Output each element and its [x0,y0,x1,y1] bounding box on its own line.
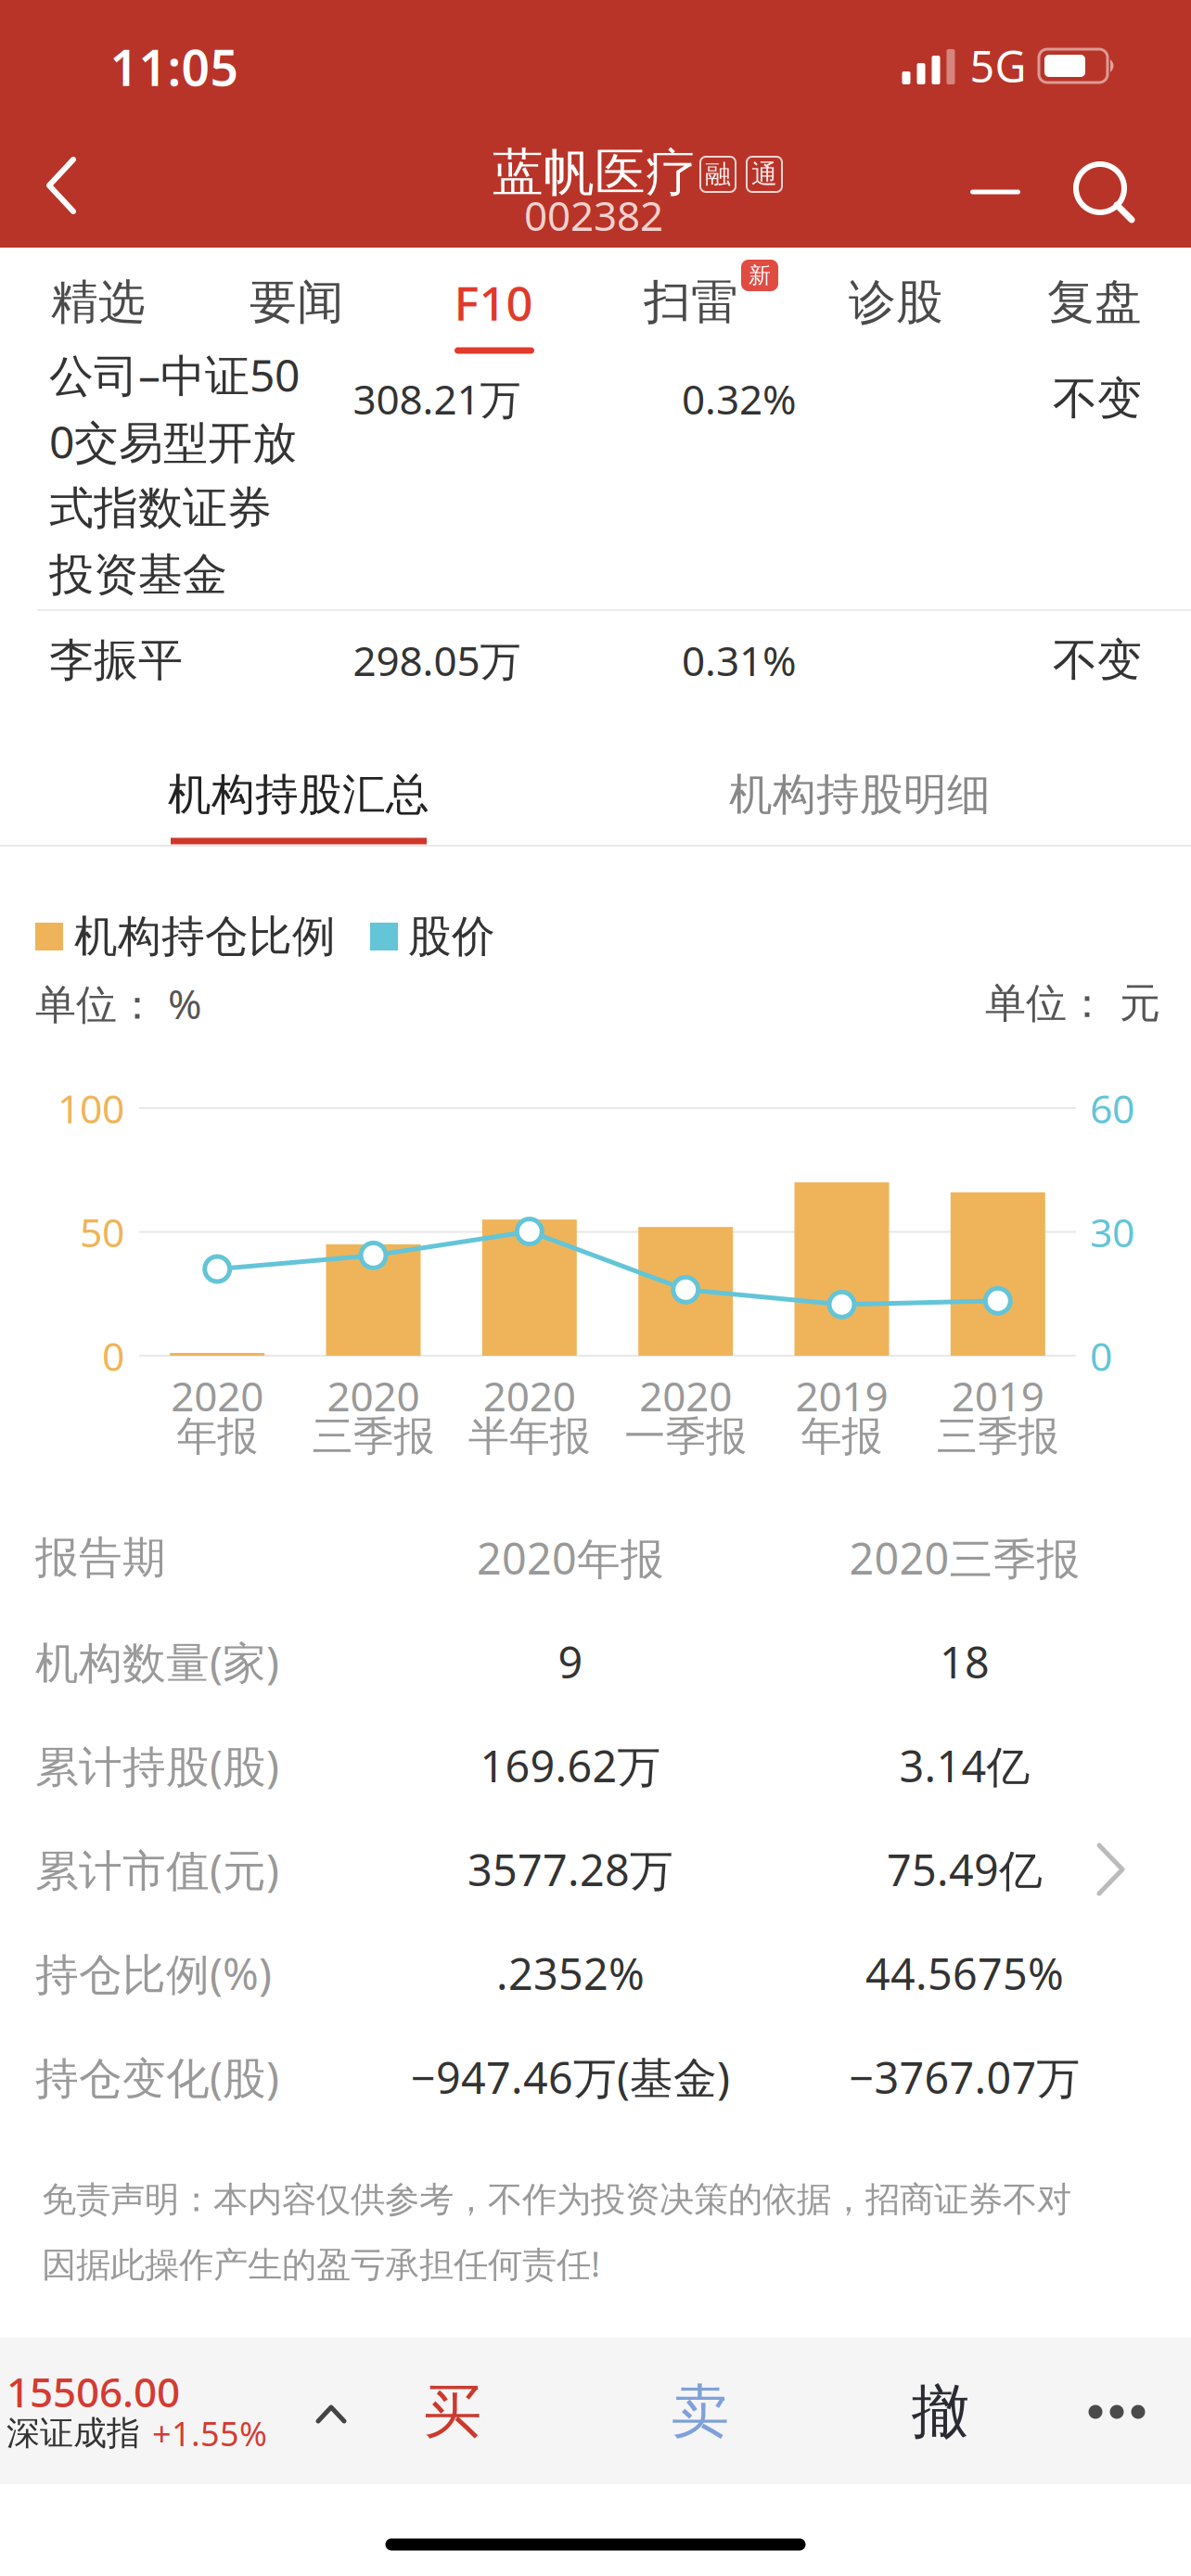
staticText: 002382 [524,188,663,242]
staticText: 100 [58,1082,124,1134]
staticText: 0.31% [682,633,797,687]
staticText: 半年报 [468,1411,591,1461]
staticText: 机构数量(家) [35,1633,279,1690]
staticText: 深证成指 [6,2413,140,2454]
button[interactable]: 诊股 [849,273,943,331]
staticText: +1.55% [152,2411,267,2455]
staticText: 式指数证券 [49,481,272,536]
button[interactable]: 买 [423,2376,482,2448]
staticText: 扫雷 [644,273,738,331]
staticText: 年报 [176,1411,258,1461]
staticText: 因据此操作产生的盈亏承担任何责任! [42,2241,600,2287]
staticText: 2019 [952,1368,1044,1423]
staticText: .2352% [496,1945,645,2002]
staticText: 投资基金 [49,548,227,602]
staticText: 2019 [795,1368,888,1423]
staticText: 298.05万 [353,633,521,687]
staticText: 卖 [671,2376,730,2448]
staticText: 不变 [1053,371,1142,426]
staticText: 2020 [327,1368,420,1423]
staticText: 11:05 [110,34,239,100]
staticText: 蓝帆医疗 [493,141,697,204]
staticText: 18 [940,1633,990,1690]
staticText: 2020 [639,1368,732,1423]
button[interactable]: Minimize [970,190,1020,194]
button[interactable]: 卖 [671,2376,730,2448]
staticText: 15506.00 [6,2364,180,2419]
staticText: 买 [423,2376,482,2448]
staticText: 复盘 [1047,273,1142,331]
button[interactable]: 累计市值(元) [0,1817,1191,1921]
staticText: 0 [102,1329,124,1382]
staticText: 0 [1090,1329,1112,1382]
button[interactable]: 要闻 [250,273,344,331]
staticText: 要闻 [250,273,344,331]
staticText: 单位： % [35,976,202,1030]
staticText: 75.49亿 [887,1841,1043,1898]
staticText: 三季报 [937,1411,1059,1461]
staticText: 持仓比例(%) [35,1945,272,2002]
button[interactable]: F10 [454,271,533,334]
staticText: 免责声明：本内容仅供参考，不作为投资决策的依据，招商证券不对 [42,2178,1071,2221]
staticText: 报告期 [35,1531,166,1584]
staticText: 44.5675% [865,1945,1064,2002]
staticText: 单位： 元 [985,978,1160,1028]
staticText: F10 [454,271,533,334]
staticText: 诊股 [849,273,943,331]
staticText: 机构持股汇总 [168,768,429,821]
staticText: 2020三季报 [849,1529,1080,1587]
button[interactable]: Search [1074,162,1133,222]
staticText: 不变 [1053,633,1142,688]
staticText: 一季报 [624,1411,747,1461]
staticText: 持仓变化(股) [35,2048,279,2106]
staticText: 2020年报 [477,1529,664,1587]
staticText: 9 [558,1633,583,1690]
staticText: 累计持股(股) [35,1737,279,1794]
staticText: 308.21万 [353,372,521,426]
staticText: 公司–中证50 [49,345,300,404]
button[interactable]: 撤 [911,2376,970,2448]
staticText: 李振平 [49,633,183,688]
staticText: 年报 [801,1411,883,1461]
staticText: 30 [1090,1206,1134,1258]
button[interactable]: 扫雷 [644,273,738,331]
staticText: 5G [970,37,1026,95]
staticText: 撤 [911,2376,970,2448]
staticText: 0.32% [682,372,797,426]
staticText: 融 [705,158,731,190]
staticText: 三季报 [312,1411,435,1461]
staticText: 50 [80,1206,124,1258]
staticText: 3577.28万 [467,1841,673,1898]
button[interactable]: More actions [1088,2404,1146,2419]
button[interactable]: Expand index panel [316,2404,346,2425]
staticText: 169.62万 [480,1737,661,1794]
staticText: 2020 [483,1368,576,1423]
button[interactable]: Back [45,156,77,215]
staticText: 0交易型开放 [49,412,297,471]
button[interactable]: 复盘 [1047,273,1142,331]
staticText: −3767.07万 [849,2048,1080,2106]
staticText: −947.46万(基金) [411,2048,730,2106]
staticText: 通 [751,158,777,190]
button[interactable]: 机构持股汇总 [168,768,429,821]
staticText: 新 [749,262,771,289]
staticText: 机构持仓比例 [74,910,336,963]
staticText: 3.14亿 [899,1737,1030,1794]
staticText: 机构持股明细 [729,768,991,821]
button[interactable]: 机构持股明细 [729,768,991,821]
staticText: 2020 [171,1368,264,1423]
staticText: 股价 [408,910,495,963]
staticText: 60 [1090,1082,1134,1134]
staticText: 精选 [51,273,146,331]
button[interactable]: 精选 [51,273,146,331]
staticText: 累计市值(元) [35,1841,279,1898]
